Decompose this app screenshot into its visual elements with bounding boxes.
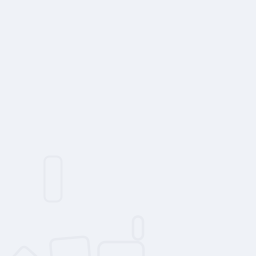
button[interactable]: Record <box>133 216 143 239</box>
